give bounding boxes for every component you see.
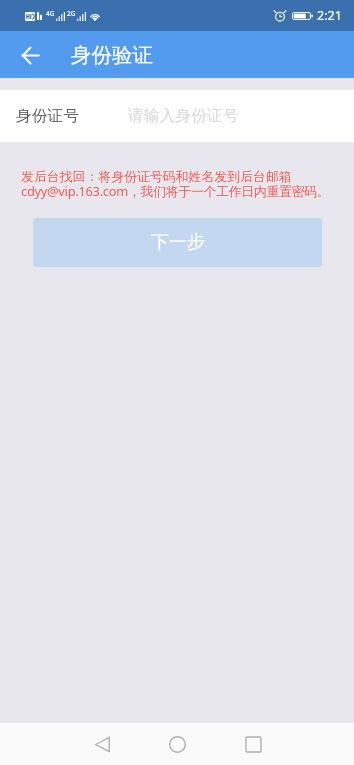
staticText: 2:21	[317, 7, 342, 24]
staticText: 下一步	[151, 231, 205, 254]
button[interactable]: 下一步	[33, 218, 322, 267]
staticText: cdyy@vip.163.com，我们将于一个工作日内重置密码。	[21, 182, 330, 200]
button[interactable]: Back	[8, 33, 52, 77]
button[interactable]: Recents	[233, 724, 273, 764]
button[interactable]: Back	[82, 724, 122, 764]
staticText: 身份证号	[16, 106, 80, 126]
staticText: 发后台找回：将身份证号码和姓名发到后台邮箱	[21, 169, 292, 185]
staticText: 2G	[67, 9, 76, 18]
staticText: 身份验证	[71, 42, 153, 68]
staticText: 4G	[46, 9, 55, 18]
button[interactable]: 身份证号	[0, 90, 354, 142]
button[interactable]: Home	[157, 724, 197, 764]
staticText: 请输入身份证号	[128, 106, 239, 126]
